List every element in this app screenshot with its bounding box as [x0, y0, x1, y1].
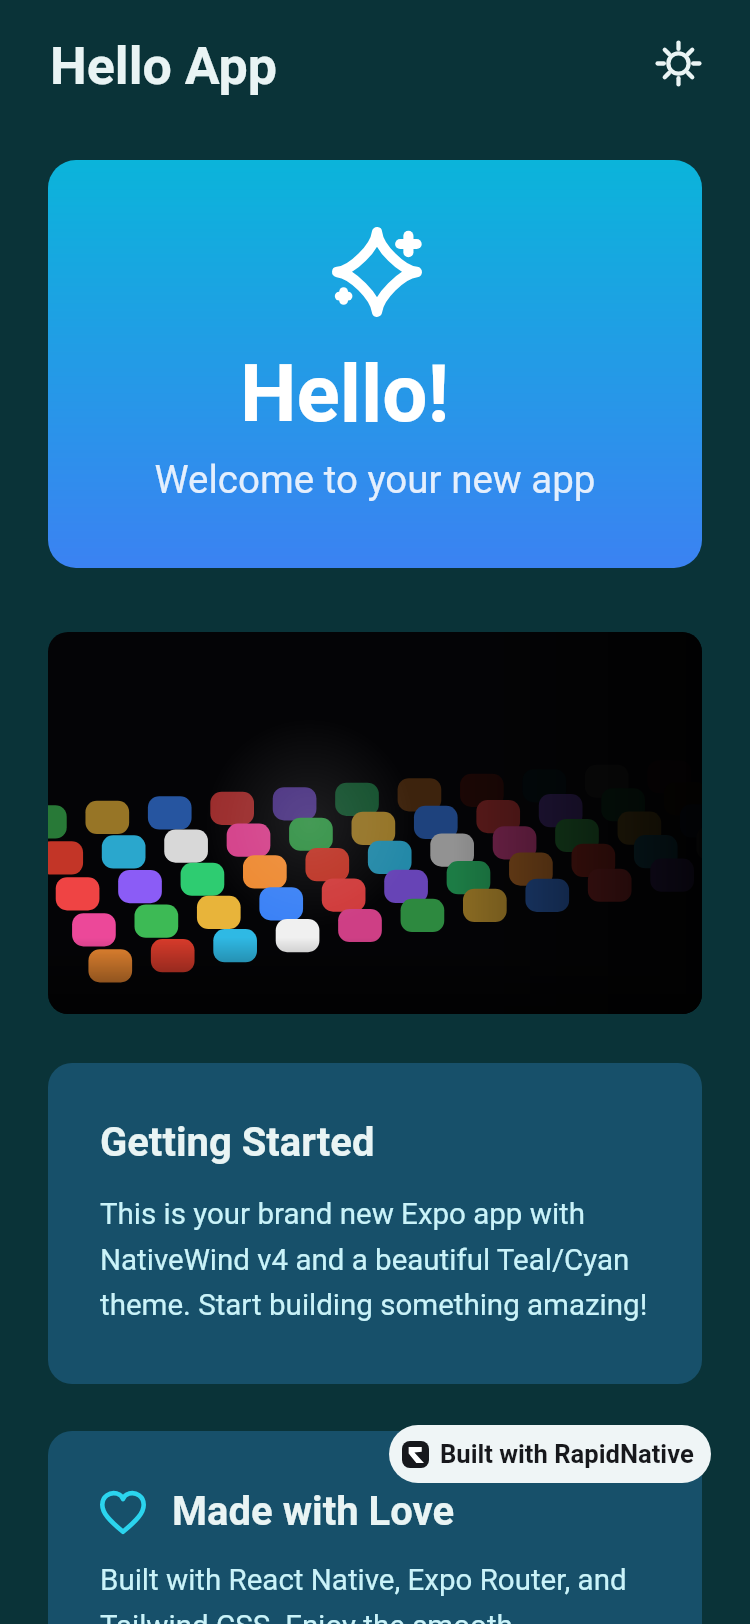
- staticText: Getting Started: [100, 1119, 375, 1166]
- staticText: Built with React Native, Expo Router, an…: [100, 1563, 662, 1624]
- staticText: This is your brand new Expo app with Nat…: [100, 1197, 662, 1322]
- staticText: Built with RapidNative: [440, 1439, 694, 1469]
- button[interactable]: Built with RapidNative: [389, 1425, 711, 1483]
- button[interactable]: Toggle theme: [646, 31, 710, 95]
- staticText: Welcome to your new app: [48, 457, 702, 502]
- button[interactable]: Getting Started: [48, 1063, 702, 1384]
- staticText: Hello!: [240, 347, 450, 441]
- staticText: Made with Love: [172, 1488, 455, 1535]
- staticText: Hello App: [50, 36, 278, 97]
- button[interactable]: Hello!: [48, 160, 702, 568]
- button[interactable]: Made with Love: [48, 1431, 702, 1624]
